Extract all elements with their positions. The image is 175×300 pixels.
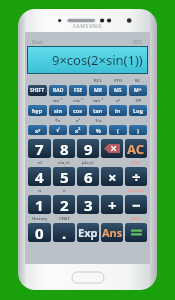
staticText: . — [87, 188, 89, 194]
staticText: M- — [135, 78, 141, 84]
staticText: − — [132, 195, 141, 214]
staticText: √ — [56, 127, 60, 133]
staticText: 1 — [35, 195, 44, 214]
button[interactable]: √ — [49, 125, 67, 135]
staticText: Log — [133, 107, 143, 114]
staticText: π — [38, 188, 42, 194]
staticText: SAMSUNG — [18, 23, 157, 30]
staticText: x² — [75, 127, 81, 134]
button[interactable]: 5 — [53, 167, 75, 186]
staticText: e — [63, 188, 66, 194]
staticText: cos⁻¹ — [73, 98, 83, 104]
button[interactable]: % — [89, 125, 107, 135]
button[interactable]: 8 — [53, 139, 75, 158]
staticText: M+ — [134, 87, 142, 94]
button[interactable]: ln — [109, 105, 127, 116]
staticText: STO — [114, 78, 122, 84]
staticText: ) — [137, 127, 139, 134]
button[interactable]: Log — [129, 105, 147, 116]
staticText: sin⁻¹ — [53, 98, 63, 104]
staticText: Float — [32, 39, 43, 45]
staticText: 7 — [35, 139, 44, 158]
staticText: 1/x — [95, 118, 102, 124]
button[interactable]: x² — [69, 125, 87, 135]
button[interactable]: . — [53, 223, 75, 242]
button[interactable]: 9×cos(2×sin(1)) — [28, 47, 147, 73]
staticText: DEG — [133, 39, 143, 45]
staticText: + — [108, 195, 117, 214]
staticText: CNST — [59, 216, 70, 222]
staticText: Exp — [78, 225, 98, 240]
staticText: eˣ — [116, 98, 121, 104]
staticText: 10ˣ — [135, 98, 142, 104]
button[interactable]: hyp — [28, 105, 47, 116]
staticText: 9 — [84, 139, 93, 158]
staticText: 4 — [35, 167, 44, 186]
staticText: RCL — [94, 78, 102, 84]
staticText: FSE — [74, 87, 83, 94]
staticText: 6 — [84, 167, 93, 186]
staticText: SHIFT — [30, 87, 45, 94]
staticText: 2 — [60, 195, 69, 214]
button[interactable]: ÷ — [125, 167, 147, 186]
button[interactable]: RAD — [49, 85, 67, 96]
staticText: AC — [127, 140, 145, 158]
staticText: Disp — [131, 160, 141, 166]
button[interactable]: ) — [129, 125, 147, 135]
button[interactable]: MS — [109, 85, 127, 96]
staticText: MS — [114, 87, 122, 94]
staticText: ÷ — [132, 167, 141, 186]
button[interactable]: × — [101, 167, 123, 186]
button[interactable]: Ans — [101, 223, 123, 242]
button[interactable]: + — [101, 195, 123, 214]
staticText: ln — [115, 107, 121, 114]
button[interactable]: 6 — [77, 167, 99, 186]
button[interactable]: 4 — [28, 167, 51, 186]
staticText: × — [108, 167, 117, 186]
button[interactable]: tan — [89, 105, 107, 116]
staticText: x³ — [76, 118, 81, 124]
button[interactable]: 3 — [77, 195, 99, 214]
staticText: 5 — [60, 167, 69, 186]
staticText: n! — [38, 160, 42, 166]
staticText: p(u,v) — [82, 160, 94, 166]
staticText: 8 — [60, 139, 69, 158]
button[interactable]: FSE — [69, 85, 87, 96]
button[interactable]: 2 — [53, 195, 75, 214]
staticText: hyp — [32, 107, 43, 114]
staticText: cos — [73, 107, 83, 114]
staticText: 0 — [35, 223, 44, 242]
button[interactable]: AC — [125, 139, 147, 158]
staticText: MR — [94, 87, 102, 94]
button[interactable]: ( — [109, 125, 127, 135]
button[interactable]: SHIFT — [28, 85, 47, 96]
staticText: History — [32, 216, 48, 222]
staticText: c(u,v) — [58, 160, 70, 166]
staticText: tan — [93, 107, 103, 114]
button[interactable]: Delete — [101, 139, 123, 158]
button[interactable]: sin — [49, 105, 67, 116]
button[interactable]: M+ — [129, 85, 147, 96]
staticText: 3 — [84, 195, 93, 214]
staticText: tan⁻¹ — [93, 98, 104, 104]
staticText: ( — [117, 127, 119, 134]
staticText: Presets — [128, 188, 144, 194]
button[interactable]: 9 — [77, 139, 99, 158]
staticText: 9×cos(2×sin(1)) — [52, 51, 143, 69]
button[interactable]: 0 — [28, 223, 51, 242]
staticText: ∛x — [55, 118, 61, 124]
button[interactable]: cos — [69, 105, 87, 116]
staticText: Ans — [102, 225, 123, 240]
button[interactable]: Equals — [125, 223, 147, 242]
button[interactable]: − — [125, 195, 147, 214]
button[interactable]: xʸ — [28, 125, 47, 135]
staticText: More — [131, 216, 142, 222]
staticText: xʸ — [35, 127, 41, 134]
button[interactable]: 1 — [28, 195, 51, 214]
button[interactable]: MR — [89, 85, 107, 96]
button[interactable]: 7 — [28, 139, 51, 158]
button[interactable]: Exp — [77, 223, 99, 242]
staticText: sin — [54, 107, 62, 114]
staticText: . — [62, 223, 67, 242]
staticText: RAD — [53, 87, 64, 94]
